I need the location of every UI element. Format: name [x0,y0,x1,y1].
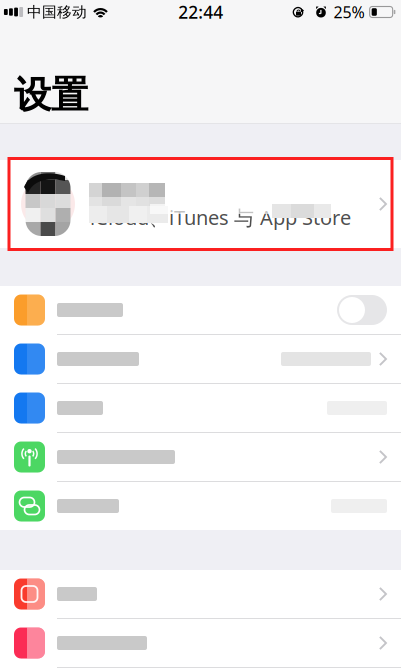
button[interactable] [0,482,401,530]
staticText: 22:44 [178,0,223,23]
button[interactable]: iCloud、iTunes 与 App Store [0,160,401,248]
staticText: 25% [333,1,364,23]
staticText: 中国移动 [27,3,87,21]
button[interactable] [0,619,401,667]
button[interactable] [0,570,401,618]
button[interactable] [0,335,401,383]
button[interactable] [0,433,401,481]
button[interactable] [0,286,401,334]
staticText: iCloud、iTunes 与 App Store [90,204,351,231]
button[interactable] [0,384,401,432]
staticText: 设置 [14,72,88,118]
